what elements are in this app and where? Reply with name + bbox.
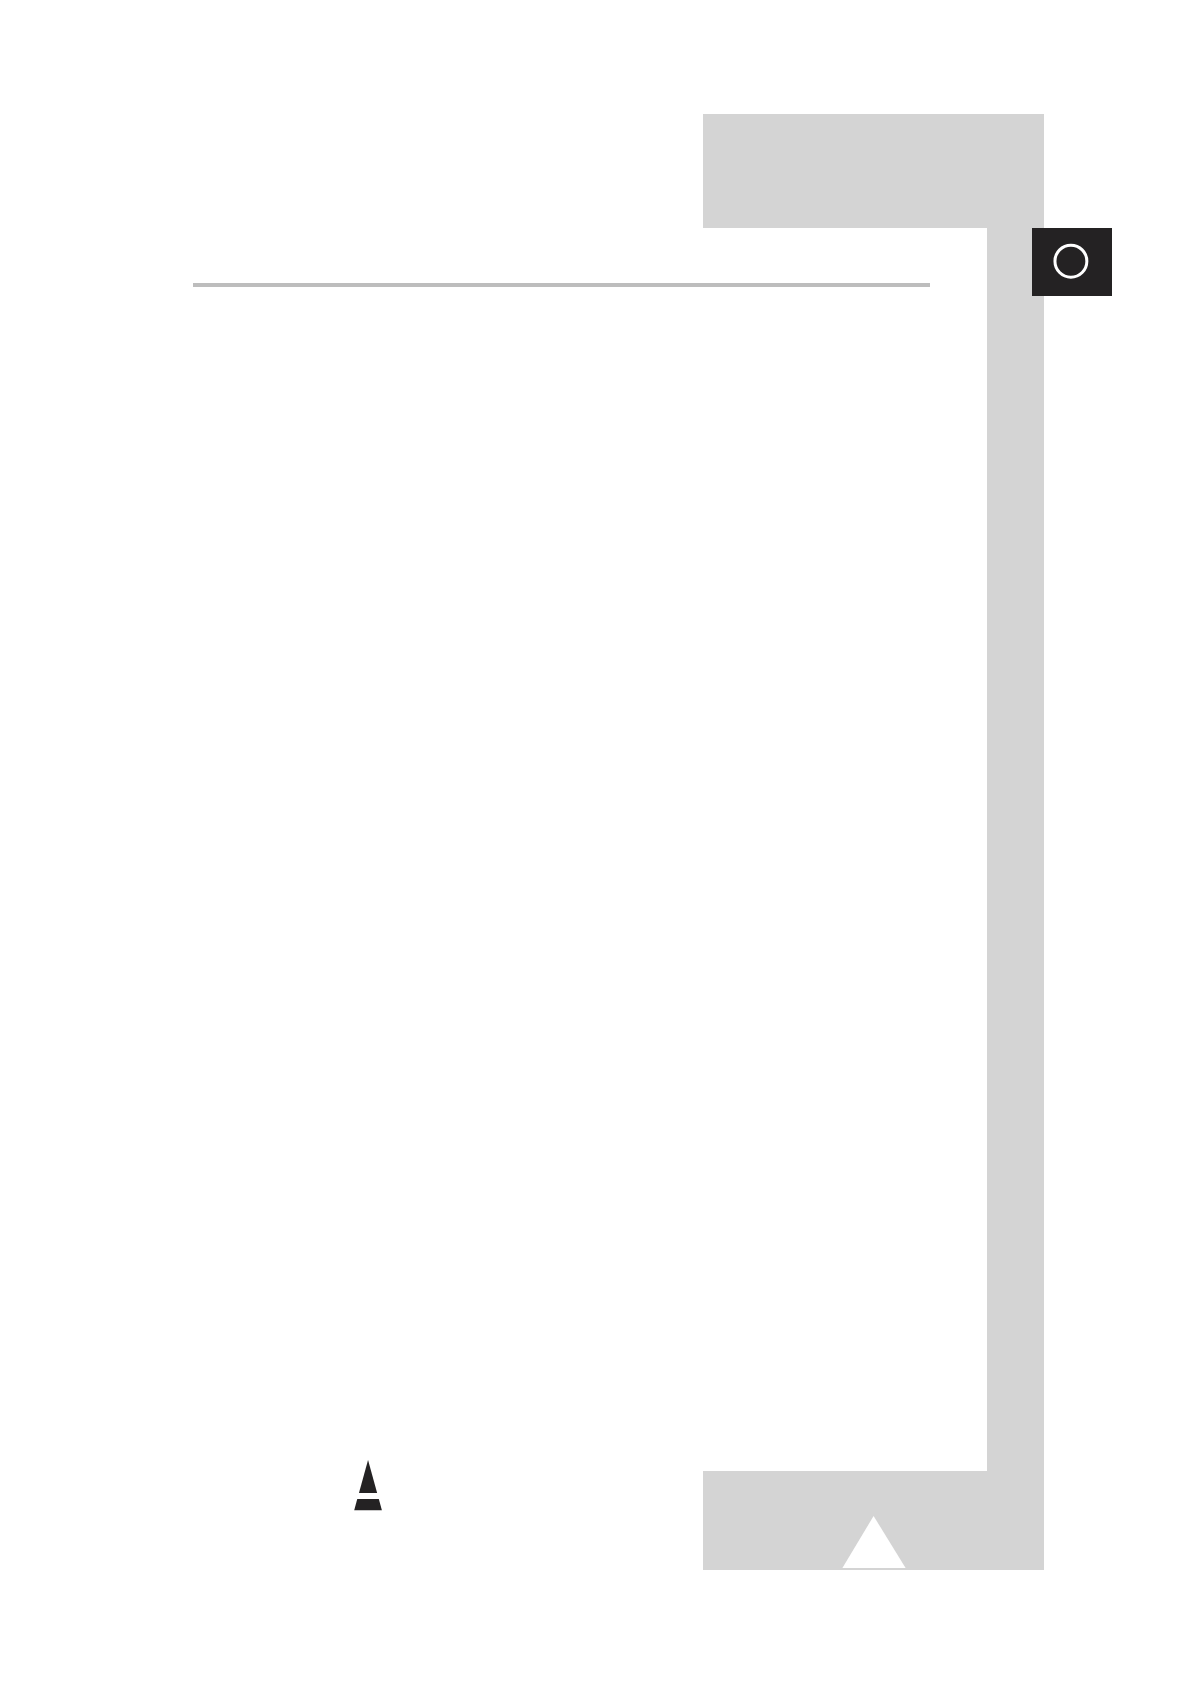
- button[interactable]: Play: [703, 1471, 1044, 1570]
- button[interactable]: Side rail: [987, 228, 1044, 1471]
- button[interactable]: Record: [1032, 228, 1112, 296]
- button[interactable]: Levels: [346, 1452, 390, 1518]
